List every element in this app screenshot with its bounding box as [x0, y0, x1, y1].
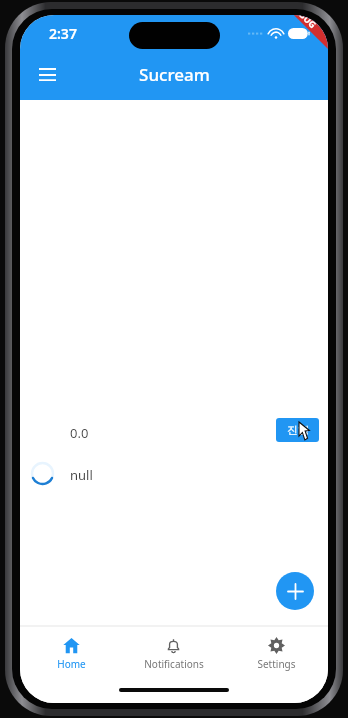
button[interactable]: Home [20, 626, 122, 681]
button[interactable]: Open navigation menu [26, 54, 68, 96]
staticText: 진행 [287, 423, 309, 437]
staticText: Sucream [139, 63, 210, 86]
staticText: Notifications [144, 657, 204, 671]
staticText: 0.0 [70, 424, 89, 442]
button[interactable]: Notifications [122, 626, 225, 681]
button[interactable]: 진행 [276, 418, 319, 442]
staticText: Home [57, 657, 86, 671]
button[interactable]: Settings [225, 626, 328, 681]
staticText: 2:37 [49, 24, 77, 43]
button[interactable]: Add [276, 572, 314, 610]
staticText: DEBUG [289, 15, 319, 30]
staticText: Settings [257, 657, 296, 671]
staticText: null [70, 466, 93, 484]
